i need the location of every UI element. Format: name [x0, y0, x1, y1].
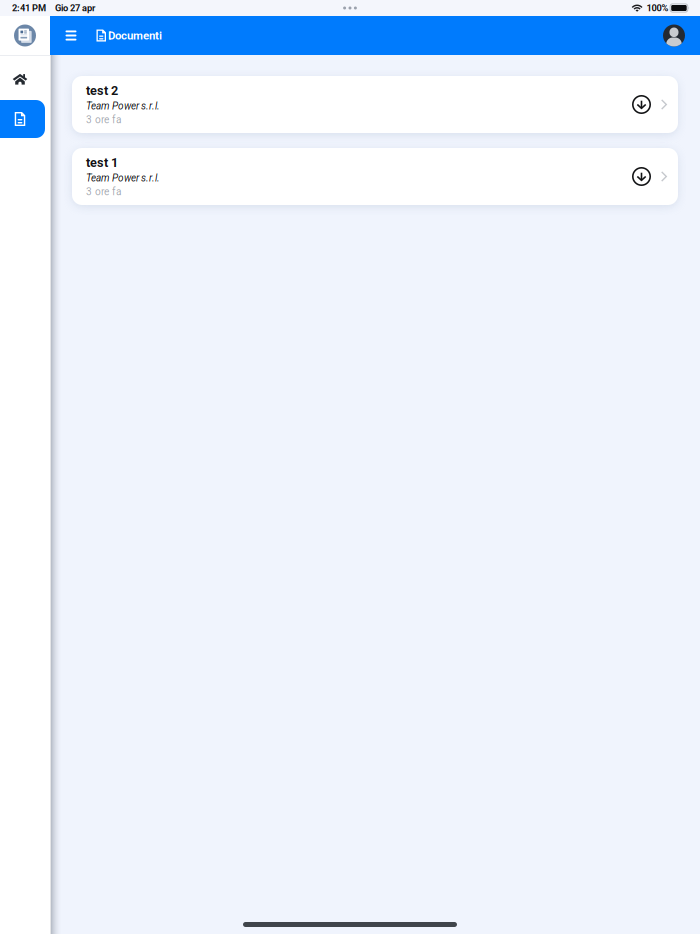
staticText: 3 ore fa: [86, 114, 122, 126]
button[interactable]: Menu: [57, 19, 85, 51]
staticText: Gio 27 apr: [55, 2, 95, 13]
staticText: 100%: [647, 2, 669, 13]
button[interactable]: test 1: [72, 148, 678, 205]
staticText: Documenti: [108, 29, 162, 42]
staticText: test 2: [86, 83, 118, 98]
staticText: test 1: [86, 155, 118, 170]
button[interactable]: Home: [0, 73, 40, 85]
button[interactable]: test 2: [72, 76, 678, 133]
staticText: 2:41 PM: [12, 2, 46, 13]
staticText: Team Power s.r.l.: [86, 100, 160, 112]
staticText: 3 ore fa: [86, 186, 122, 198]
staticText: Team Power s.r.l.: [86, 172, 160, 184]
button[interactable]: Account: [663, 24, 685, 46]
button[interactable]: Documents: [0, 100, 45, 138]
